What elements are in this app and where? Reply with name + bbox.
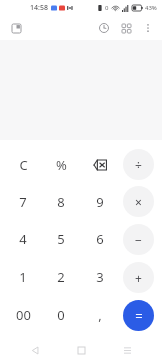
staticText: % xyxy=(56,156,67,174)
staticText: 7 xyxy=(19,193,27,211)
button[interactable]: Unit converter xyxy=(117,19,135,37)
button[interactable]: 1 xyxy=(7,261,39,293)
staticText: 9 xyxy=(96,193,104,211)
staticText: 0 xyxy=(105,4,109,12)
button[interactable]: History xyxy=(95,19,113,37)
staticText: 5 xyxy=(57,230,65,248)
button[interactable]: , xyxy=(84,299,116,331)
button[interactable]: Home xyxy=(70,340,92,360)
button[interactable]: ÷ xyxy=(123,149,154,180)
button[interactable]: 7 xyxy=(7,186,39,218)
button[interactable]: 00 xyxy=(7,299,39,331)
staticText: 3 xyxy=(96,268,104,286)
button[interactable]: 8 xyxy=(45,186,77,218)
staticText: , xyxy=(98,306,102,324)
staticText: × xyxy=(135,194,142,210)
staticText: 14:58 xyxy=(30,3,48,13)
staticText: 8 xyxy=(57,193,65,211)
staticText: + xyxy=(135,270,142,286)
button[interactable]: % xyxy=(45,149,77,181)
button[interactable]: C xyxy=(7,149,39,181)
staticText: 4 xyxy=(19,230,27,248)
button[interactable]: 3 xyxy=(84,261,116,293)
button[interactable]: − xyxy=(123,224,154,255)
staticText: 1 xyxy=(19,268,27,286)
staticText: ÷ xyxy=(135,157,142,173)
button[interactable]: = xyxy=(123,300,154,331)
button[interactable]: + xyxy=(123,262,154,293)
button[interactable]: 4 xyxy=(7,223,39,255)
button[interactable]: Back xyxy=(24,340,46,360)
button[interactable]: 9 xyxy=(84,186,116,218)
staticText: = xyxy=(135,307,143,325)
button[interactable]: 2 xyxy=(45,261,77,293)
button[interactable]: Recent apps xyxy=(116,340,138,360)
staticText: 00 xyxy=(16,306,31,324)
button[interactable]: More options xyxy=(139,19,157,37)
button[interactable]: 0 xyxy=(45,299,77,331)
staticText: 2 xyxy=(57,268,65,286)
staticText: − xyxy=(135,232,142,248)
staticText: 43% xyxy=(145,4,157,12)
button[interactable]: 5 xyxy=(45,223,77,255)
staticText: 0 xyxy=(57,306,65,324)
button[interactable]: Floating window xyxy=(7,19,25,37)
button[interactable]: × xyxy=(123,186,154,217)
staticText: C xyxy=(19,156,28,174)
button[interactable]: Backspace xyxy=(84,149,116,181)
staticText: 6 xyxy=(96,230,104,248)
button[interactable]: 6 xyxy=(84,223,116,255)
